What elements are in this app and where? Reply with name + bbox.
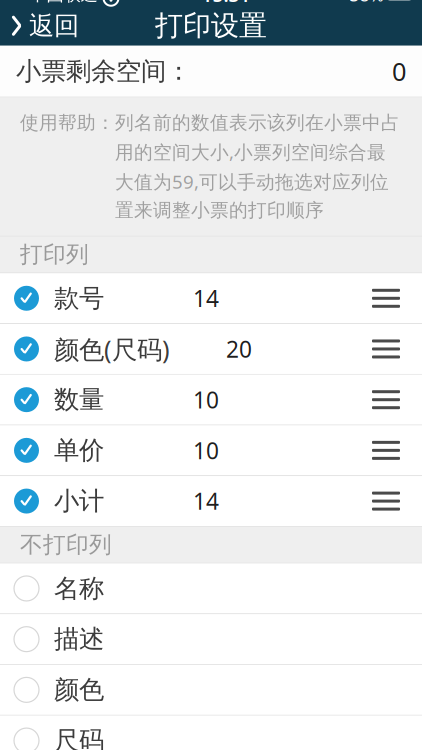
button[interactable]: 名称 [0,563,422,614]
staticText: 0 [392,54,406,88]
staticText: 名称 [54,573,104,604]
staticText: 数量 [54,384,104,415]
staticText: 中国联通 [29,0,97,5]
staticText: 不打印列 [20,531,112,559]
staticText: 单价 [54,435,104,466]
staticText: 使用帮助： [20,111,115,134]
staticText: 返回 [29,10,79,41]
button[interactable]: 颜色(尺码) [0,324,422,375]
button[interactable]: 单价 [0,425,422,476]
staticText: 14 [193,283,219,313]
staticText: 38% [349,0,383,6]
button[interactable]: 描述 [0,614,422,665]
button[interactable]: 数量 [0,375,422,425]
button[interactable]: 小计 [0,476,422,527]
staticText: 颜色(尺码) [54,332,170,366]
staticText: 列名前的数值表示该列在小票中占用的空间大小,小票列空间综合最大值为59,可以手动… [115,111,400,222]
staticText: 款号 [54,283,104,314]
staticText: 描述 [54,624,104,655]
staticText: 15:31 [201,0,250,7]
button[interactable]: 颜色 [0,665,422,716]
staticText: 14 [193,486,219,516]
staticText: 打印列 [20,241,89,268]
staticText: 10 [193,385,219,415]
staticText: 尺码 [54,725,104,750]
button[interactable]: 返回 [0,4,79,47]
staticText: 小票剩余空间： [16,56,191,87]
staticText: 20 [226,334,252,364]
staticText: 打印设置 [155,8,267,43]
staticText: 10 [193,435,219,465]
button[interactable]: 尺码 [0,716,422,750]
staticText: 颜色 [54,674,104,705]
button[interactable]: 款号 [0,273,422,324]
staticText: 小计 [54,485,104,517]
